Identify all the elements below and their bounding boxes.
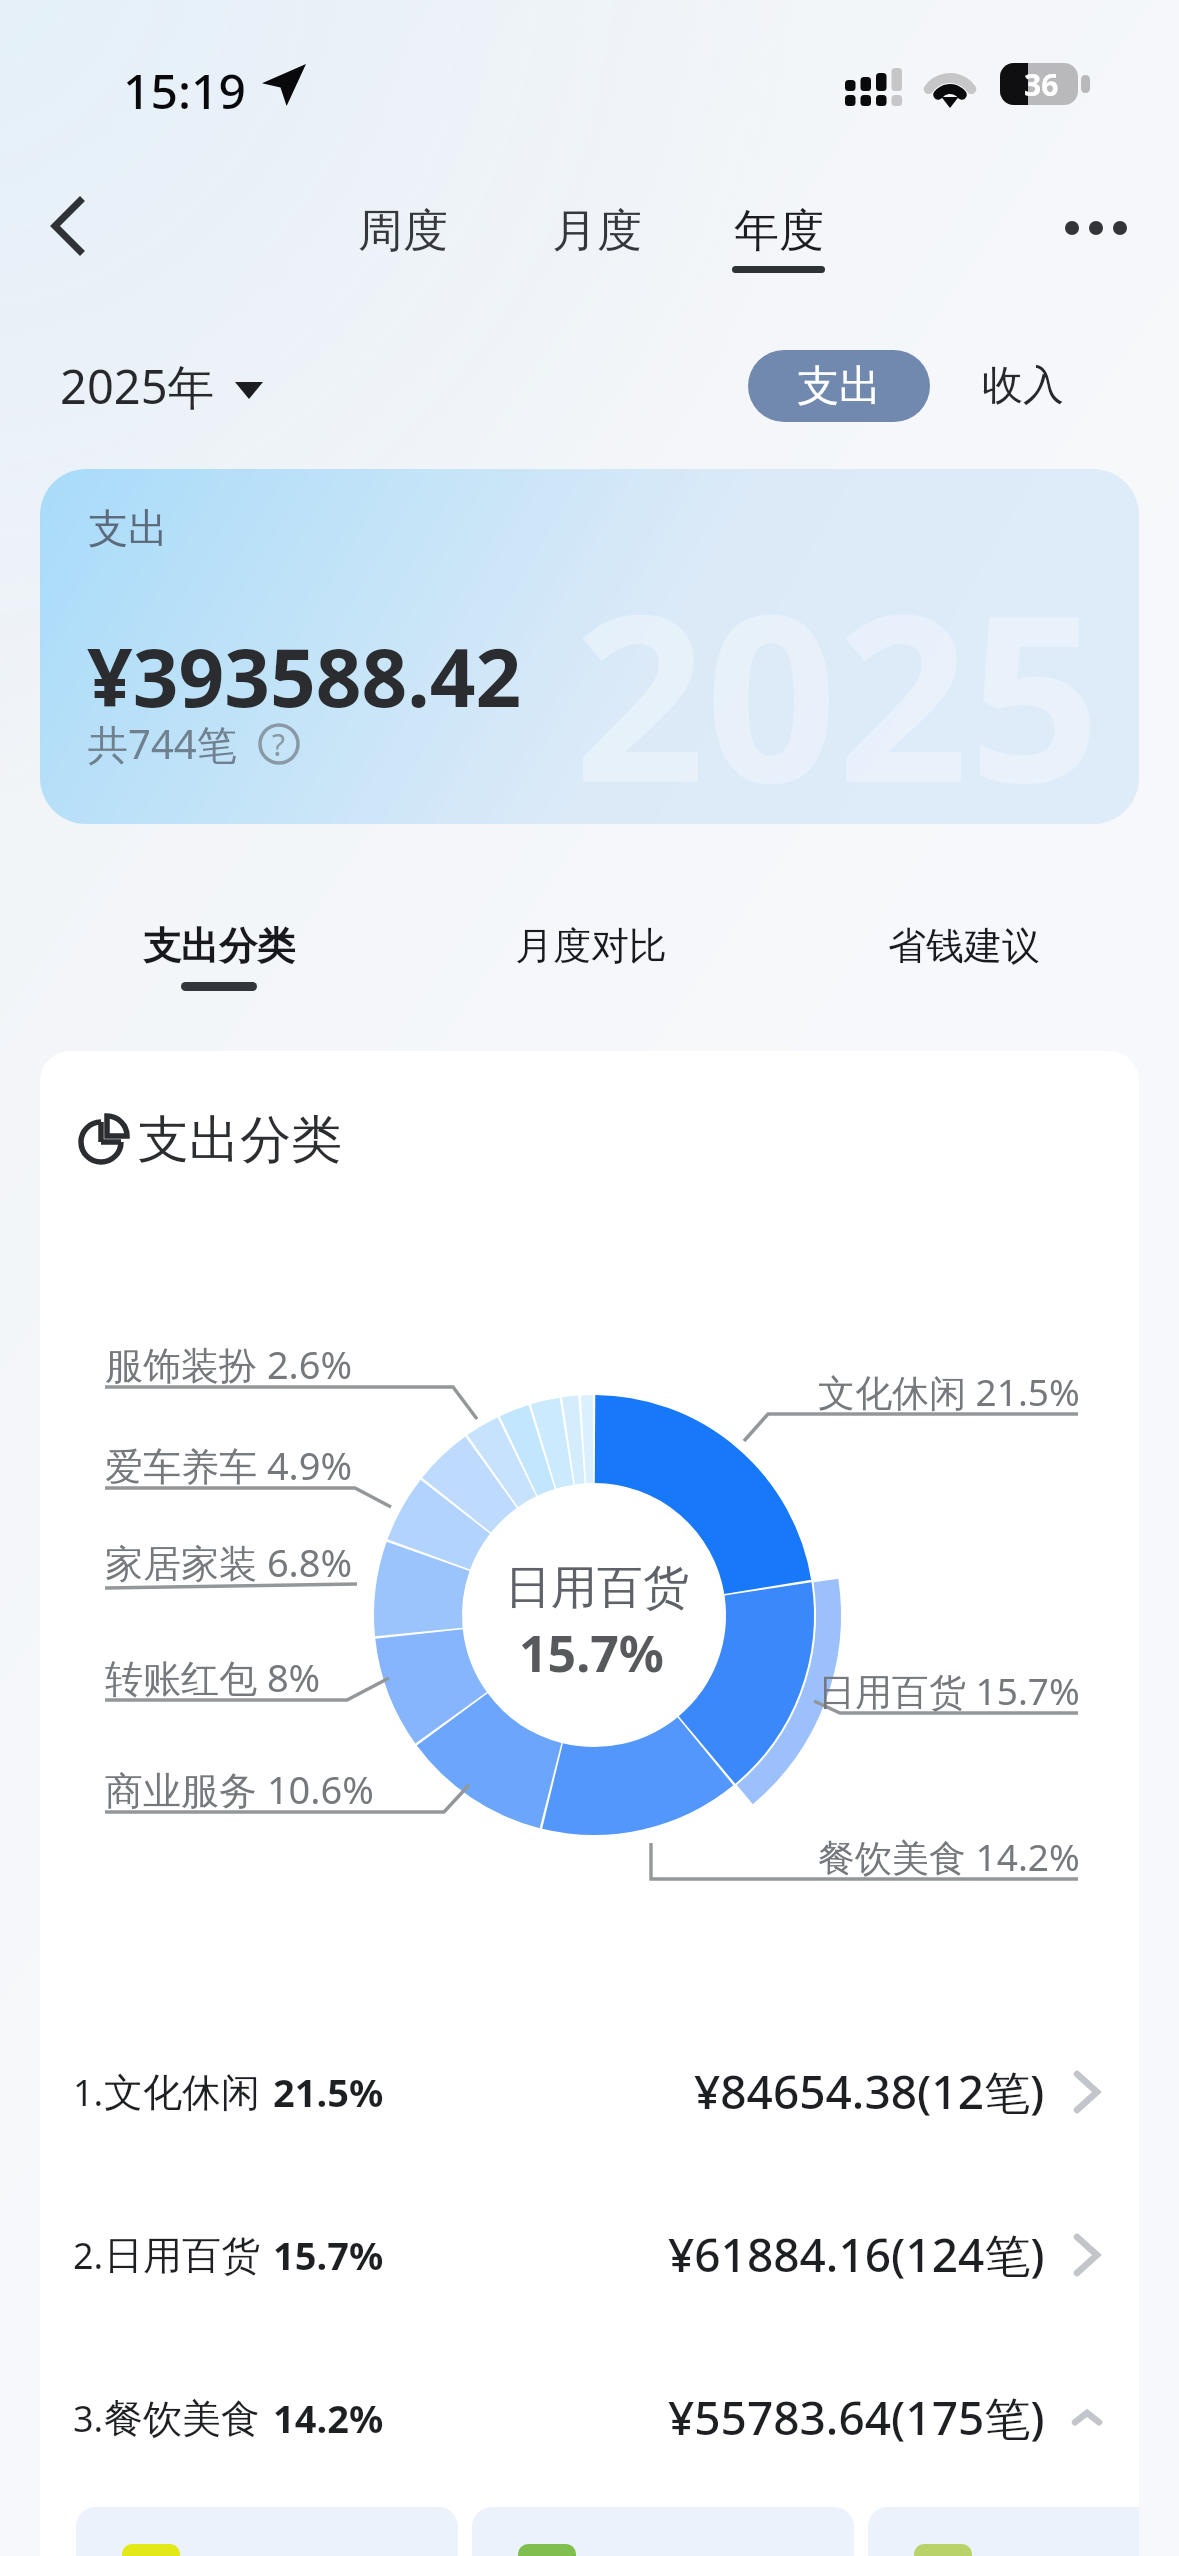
staticText: 文化休闲 [104,2068,260,2117]
button[interactable]: 月度 [538,203,656,260]
staticText: 15.7% [519,1619,664,1687]
button[interactable] [472,2507,854,2556]
staticText: 3. [73,2394,104,2443]
staticText: 15:19 [123,58,246,123]
button[interactable]: 周度 [344,203,462,260]
staticText: ¥55783.64(175笔) [668,2386,1045,2449]
button[interactable]: 2025 [40,469,1139,824]
button[interactable]: Back [21,176,113,276]
button[interactable]: 月度对比 [499,912,683,980]
button[interactable]: 支出分类 [127,912,311,1001]
staticText: 文化休闲 21.5% [818,1366,1080,1417]
button[interactable]: 年度 [718,203,839,273]
staticText: ¥84654.38(12笔) [694,2060,1045,2123]
button[interactable]: 收入 [962,350,1084,422]
staticText: 省钱建议 [888,922,1040,970]
staticText: 21.5% [273,2066,384,2118]
staticText: 支出分类 [138,1108,342,1172]
button[interactable]: 1. [40,2010,1139,2173]
staticText: 餐饮美食 [104,2394,260,2443]
staticText: 爱车养车 4.9% [105,1439,353,1491]
button[interactable]: More options [1046,178,1146,278]
staticText: 月度 [552,203,642,260]
staticText: ¥61884.16(124笔) [668,2223,1045,2286]
staticText: 支出 [88,503,168,553]
staticText: 15.7% [273,2229,384,2281]
staticText: 月度对比 [515,922,667,970]
button[interactable] [868,2507,1139,2556]
button[interactable]: 3. [40,2336,1139,2499]
staticText: 1. [73,2068,104,2117]
staticText: ? [272,724,286,765]
staticText: 转账红包 8% [105,1651,321,1703]
staticText: 收入 [982,360,1064,412]
button[interactable]: Help [255,720,303,768]
button[interactable]: 支出 [748,350,930,422]
button[interactable]: 2. [40,2173,1139,2336]
staticText: 14.2% [273,2392,384,2444]
staticText: 日用百货 [104,2231,260,2280]
button[interactable]: 省钱建议 [872,912,1056,980]
button[interactable]: 2025年 [54,348,269,424]
staticText: 周度 [358,203,448,260]
staticText: 支出分类 [143,922,295,970]
staticText: 餐饮美食 14.2% [818,1831,1080,1882]
staticText: 日用百货 15.7% [818,1665,1080,1716]
staticText: ¥393588.42 [87,621,522,730]
staticText: 2025年 [60,354,215,418]
button[interactable] [76,2507,458,2556]
staticText: 服饰装扮 2.6% [105,1338,353,1390]
staticText: 家居家装 6.8% [105,1536,353,1588]
staticText: 支出 [797,360,881,413]
staticText: 商业服务 10.6% [105,1763,374,1815]
staticText: 2. [73,2231,104,2280]
staticText: 年度 [734,203,824,260]
staticText: 36 [1024,64,1059,105]
staticText: 2025 [574,536,1101,824]
staticText: 共744笔 [88,716,237,771]
staticText: 日用百货 [505,1559,689,1617]
